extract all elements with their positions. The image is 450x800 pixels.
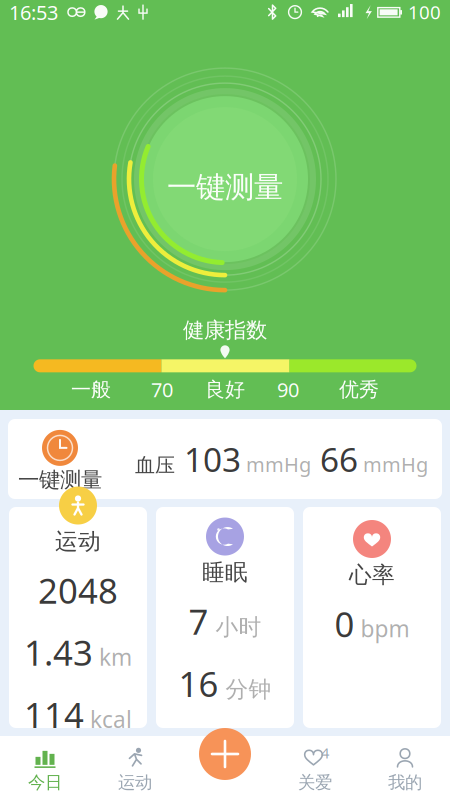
staticText: 良好 (205, 377, 245, 402)
staticText: 16 (178, 660, 218, 706)
staticText: 一键测量 (167, 169, 283, 205)
staticText: bpm (354, 613, 409, 644)
button[interactable]: 我的 (360, 736, 450, 800)
staticText: km (93, 642, 132, 672)
staticText: 7 (188, 598, 208, 644)
button[interactable]: 运动 (9, 507, 147, 728)
staticText: 100 (408, 0, 441, 24)
staticText: 运动 (55, 527, 101, 555)
staticText: 1.43 (24, 629, 93, 675)
staticText: 今日 (28, 772, 62, 793)
button[interactable]: 一键测量 (0, 27, 450, 317)
staticText: 我的 (388, 772, 422, 793)
button[interactable]: Add (198, 727, 252, 781)
staticText: 心率 (349, 561, 395, 589)
staticText: 90 (277, 376, 299, 403)
staticText: 2048 (38, 567, 118, 613)
staticText: mmHg (241, 451, 311, 477)
staticText: kcal (84, 704, 132, 734)
staticText: 运动 (118, 772, 152, 793)
staticText: 4 (321, 743, 329, 763)
staticText: mmHg (358, 451, 428, 477)
staticText: 健康指数 (183, 317, 267, 343)
staticText: 血压 (135, 453, 175, 478)
staticText: 关爱 (298, 772, 332, 793)
staticText: 小时 (208, 613, 261, 641)
button[interactable]: 运动 (90, 736, 180, 800)
button[interactable]: 今日 (0, 736, 90, 800)
button[interactable]: 一键测量 (8, 419, 442, 499)
staticText: 70 (151, 376, 173, 403)
staticText: 一键测量 (18, 467, 102, 493)
staticText: 66 (311, 437, 358, 481)
staticText: 16:53 (9, 0, 58, 25)
button[interactable]: 4 (270, 736, 360, 800)
staticText: 睡眠 (202, 558, 248, 586)
staticText: 103 (175, 437, 241, 481)
button[interactable]: 心率 (303, 507, 441, 728)
staticText: 0 (334, 601, 354, 647)
staticText: 分钟 (218, 675, 271, 703)
staticText: 一般 (71, 377, 111, 402)
staticText: 114 (24, 691, 84, 737)
button[interactable]: 睡眠 (156, 507, 294, 728)
staticText: 优秀 (339, 377, 379, 402)
